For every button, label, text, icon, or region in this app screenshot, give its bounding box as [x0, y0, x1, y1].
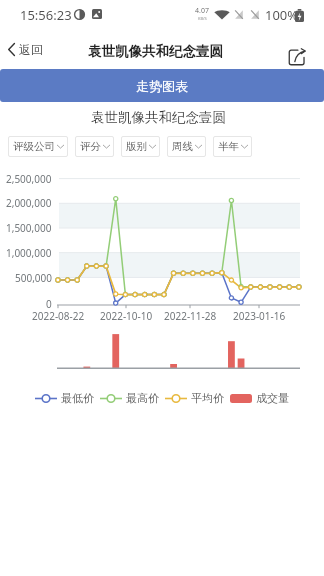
button[interactable]: 最低价 — [35, 391, 94, 405]
staticText: 评级公司 — [13, 140, 55, 153]
button[interactable]: 版别 — [121, 136, 160, 157]
staticText: 1,500,000 — [6, 221, 52, 235]
staticText: 返回 — [19, 42, 43, 57]
staticText: 成交量 — [256, 391, 289, 405]
button[interactable]: 走势图表 — [0, 69, 324, 102]
staticText: 周线 — [172, 140, 193, 153]
button[interactable]: 周线 — [167, 136, 206, 157]
staticText: 走势图表 — [136, 78, 188, 94]
button[interactable]: 成交量 — [230, 391, 289, 405]
staticText: 2023-01-16 — [233, 309, 286, 323]
staticText: 袁世凯像共和纪念壹圆 — [91, 109, 226, 126]
button[interactable]: 半年 — [213, 136, 252, 157]
button[interactable]: 平均价 — [165, 391, 224, 405]
staticText: 1,000,000 — [6, 246, 52, 260]
button[interactable]: 评分 — [75, 136, 114, 157]
staticText: 半年 — [218, 140, 239, 153]
button[interactable]: 评级公司 — [8, 136, 68, 157]
staticText: 2022-11-28 — [164, 309, 217, 323]
staticText: 2022-10-10 — [100, 309, 153, 323]
staticText: 袁世凯像共和纪念壹圆 — [88, 43, 223, 60]
staticText: 最高价 — [126, 391, 159, 405]
button[interactable]: 分享 — [284, 44, 309, 69]
staticText: 版别 — [126, 140, 147, 153]
staticText: 2,000,000 — [6, 196, 52, 210]
staticText: 100% — [265, 6, 299, 24]
staticText: 评分 — [80, 140, 101, 153]
staticText: 15:56:23 — [20, 6, 72, 24]
button[interactable]: 最高价 — [100, 391, 159, 405]
staticText: 最低价 — [61, 391, 94, 405]
staticText: 0 — [46, 297, 52, 311]
staticText: 平均价 — [191, 391, 224, 405]
staticText: 2,500,000 — [6, 172, 52, 186]
button[interactable]: 返回 — [0, 36, 51, 62]
staticText: 500,000 — [15, 271, 52, 285]
staticText: KB/S — [198, 16, 207, 21]
staticText: 2022-08-22 — [32, 309, 85, 323]
staticText: 4.07 — [195, 6, 209, 16]
